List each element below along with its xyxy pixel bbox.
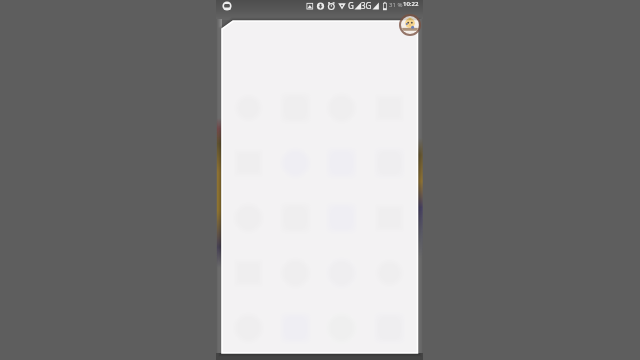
other: Channel avatar [399, 14, 421, 36]
button[interactable]: Weather [318, 301, 365, 355]
staticText: G [348, 0, 354, 11]
button[interactable]: Files [272, 301, 319, 355]
staticText: 3G [361, 0, 372, 11]
button[interactable]: Settings [225, 301, 272, 355]
staticText: 31 % [389, 1, 403, 9]
staticText: 10:22 [403, 0, 419, 8]
button[interactable]: YouTube [366, 301, 413, 355]
